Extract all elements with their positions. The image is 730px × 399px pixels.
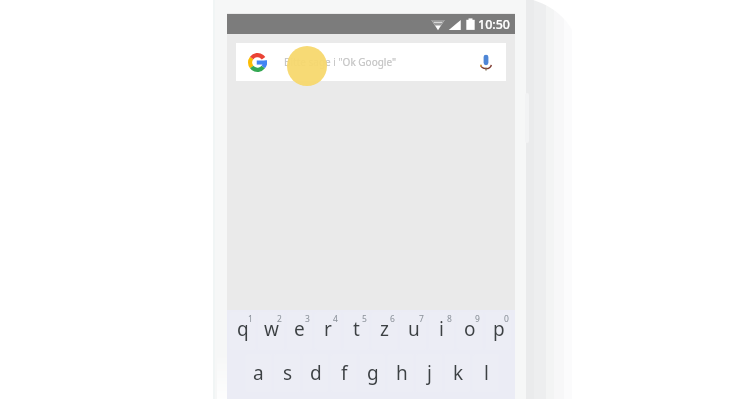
staticText: i — [439, 316, 444, 342]
staticText: j — [427, 360, 432, 386]
button[interactable]: 9 — [457, 312, 482, 350]
button[interactable]: s — [275, 356, 300, 394]
staticText: r — [324, 316, 332, 342]
staticText: 8 — [447, 313, 452, 325]
staticText: Bitte sage i "Ok Google" — [284, 55, 397, 69]
button[interactable]: 0 — [486, 312, 511, 350]
staticText: 7 — [419, 313, 424, 325]
staticText: s — [283, 360, 293, 386]
button[interactable]: 4 — [315, 312, 340, 350]
staticText: a — [253, 360, 264, 386]
button[interactable]: 2 — [259, 312, 284, 350]
button[interactable]: 6 — [372, 312, 397, 350]
staticText: o — [464, 316, 476, 342]
button[interactable]: 1 — [230, 312, 255, 350]
staticText: f — [341, 360, 348, 386]
staticText: w — [264, 316, 279, 342]
staticText: 4 — [333, 313, 338, 325]
staticText: 9 — [475, 313, 480, 325]
button[interactable]: 8 — [429, 312, 454, 350]
staticText: e — [294, 316, 305, 342]
staticText: p — [493, 316, 505, 342]
staticText: u — [408, 316, 420, 342]
staticText: 10:50 — [478, 16, 511, 33]
button[interactable]: Bitte sage i "Ok Google" — [236, 43, 506, 81]
staticText: 1 — [248, 313, 253, 325]
staticText: t — [353, 316, 360, 342]
button[interactable]: 7 — [401, 312, 426, 350]
staticText: 5 — [362, 313, 367, 325]
staticText: l — [484, 360, 489, 386]
button[interactable]: h — [389, 356, 414, 394]
staticText: q — [237, 316, 249, 342]
button[interactable]: 5 — [344, 312, 369, 350]
staticText: h — [396, 360, 408, 386]
staticText: 0 — [504, 313, 509, 325]
button[interactable]: j — [417, 356, 442, 394]
staticText: 6 — [390, 313, 395, 325]
button[interactable]: k — [446, 356, 471, 394]
staticText: 3 — [305, 313, 310, 325]
staticText: d — [310, 360, 322, 386]
staticText: k — [453, 360, 464, 386]
button[interactable]: g — [360, 356, 385, 394]
button[interactable]: d — [303, 356, 328, 394]
button[interactable]: a — [246, 356, 271, 394]
button[interactable]: Voice search — [472, 48, 500, 76]
button[interactable]: f — [332, 356, 357, 394]
button[interactable]: 3 — [287, 312, 312, 350]
button[interactable]: l — [474, 356, 499, 394]
staticText: g — [367, 360, 379, 386]
staticText: 2 — [277, 313, 282, 325]
staticText: z — [380, 316, 389, 342]
